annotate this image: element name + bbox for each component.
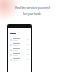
staticText: Find the services you need bbox=[15, 6, 50, 10]
button[interactable] bbox=[8, 37, 31, 42]
button[interactable] bbox=[8, 47, 31, 52]
button[interactable] bbox=[8, 52, 31, 57]
button[interactable] bbox=[8, 42, 31, 47]
staticText: for your book bbox=[23, 12, 41, 16]
button[interactable] bbox=[8, 57, 31, 62]
